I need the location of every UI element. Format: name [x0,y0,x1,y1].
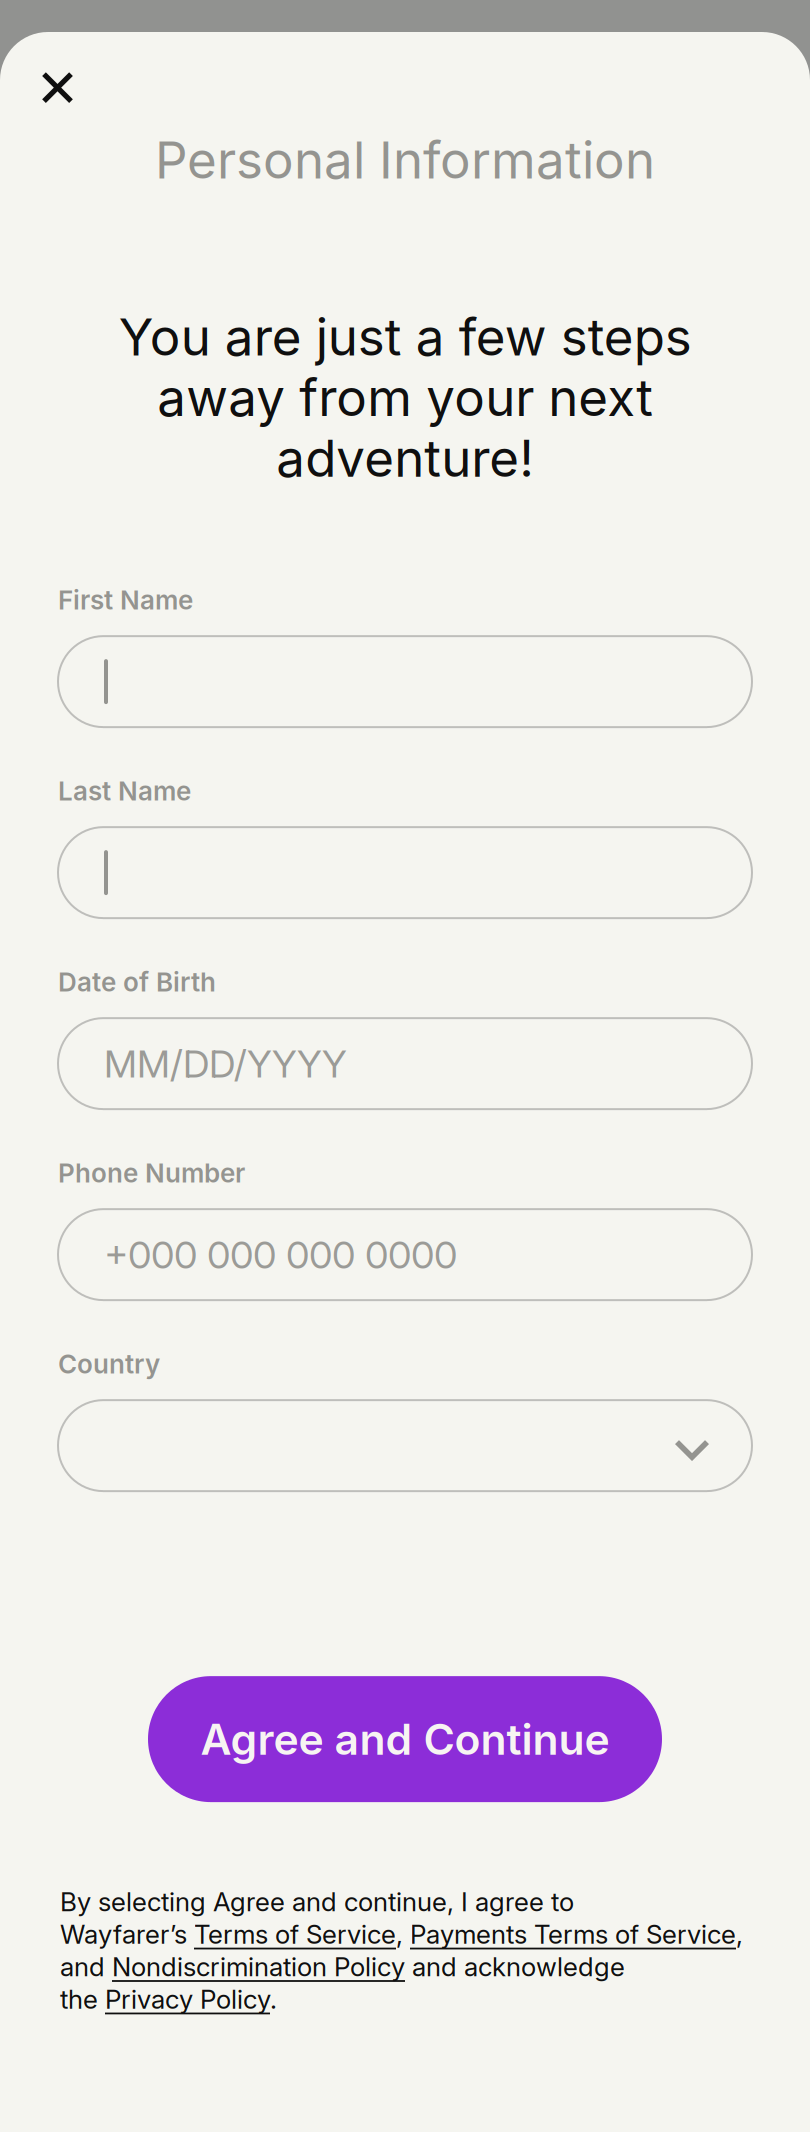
staticText: Agree and Continue [200,1713,609,1765]
button[interactable] [58,827,752,918]
button[interactable] [58,636,752,727]
button[interactable]: MM/DD/YYYY [58,1018,752,1109]
staticText: First Name [58,584,193,616]
staticText: Country [58,1348,160,1380]
staticText: Personal Information [155,129,655,191]
button[interactable]: Agree and Continue [148,1676,662,1802]
staticText: You are just a few steps away from your … [118,306,691,489]
staticText: Last Name [58,775,191,807]
button[interactable]: +000 000 000 0000 [58,1209,752,1300]
staticText: +000 000 000 0000 [104,1232,457,1278]
button[interactable]: Close [0,39,100,130]
staticText: Phone Number [58,1157,245,1189]
staticText: By selecting Agree and continue, I agree… [60,1886,743,2015]
staticText: Date of Birth [58,966,216,998]
button[interactable] [58,1400,752,1491]
staticText: MM/DD/YYYY [104,1041,347,1087]
